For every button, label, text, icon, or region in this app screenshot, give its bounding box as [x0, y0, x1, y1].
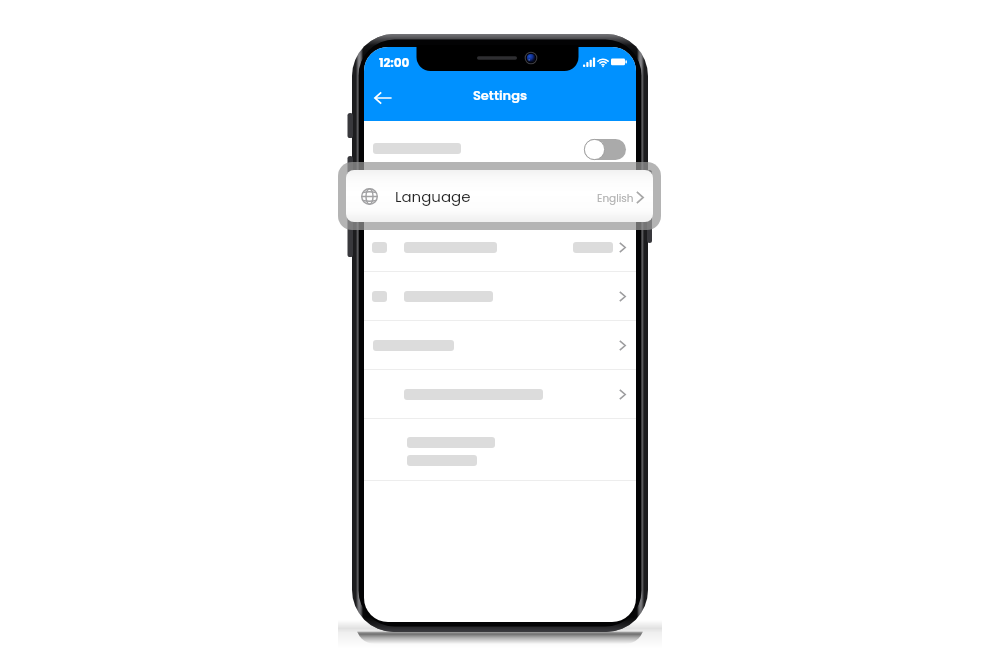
- button[interactable]: [364, 321, 636, 369]
- button[interactable]: Language: [346, 170, 653, 222]
- button[interactable]: [364, 221, 636, 271]
- button[interactable]: [364, 272, 636, 320]
- staticText: Language: [395, 186, 471, 207]
- button[interactable]: Back: [367, 82, 399, 114]
- staticText: Settings: [364, 86, 636, 104]
- staticText: English: [597, 191, 634, 206]
- button[interactable]: [364, 419, 636, 480]
- button[interactable]: [364, 121, 636, 174]
- staticText: 12:00: [379, 54, 410, 71]
- button[interactable]: [364, 370, 636, 418]
